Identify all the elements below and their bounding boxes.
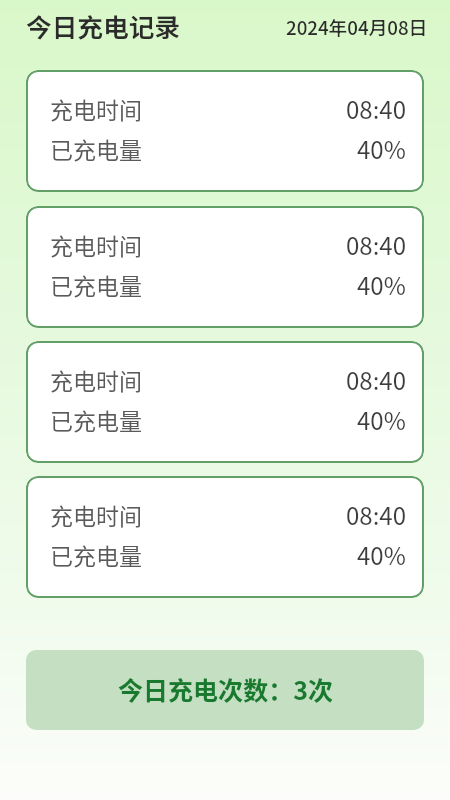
staticText: 2024年04月08日 [286, 13, 428, 40]
staticText: 充电时间 [50, 92, 142, 125]
staticText: 充电时间 [50, 498, 142, 531]
staticText: 08:40 [346, 91, 406, 126]
button[interactable]: 充电时间 [26, 476, 424, 598]
staticText: 08:40 [346, 497, 406, 532]
staticText: 已充电量 [50, 268, 142, 301]
staticText: 充电时间 [50, 228, 142, 261]
staticText: 40% [357, 267, 406, 302]
staticText: 充电时间 [50, 363, 142, 396]
staticText: 已充电量 [50, 403, 142, 436]
button[interactable]: 充电时间 [26, 206, 424, 328]
staticText: 今日充电次数：3次 [118, 671, 333, 707]
staticText: 40% [357, 402, 406, 437]
staticText: 已充电量 [50, 538, 142, 571]
button[interactable]: 充电时间 [26, 341, 424, 463]
button[interactable]: 充电时间 [26, 70, 424, 192]
button[interactable]: 今日充电次数：3次 [26, 650, 424, 730]
staticText: 今日充电记录 [26, 7, 181, 44]
staticText: 08:40 [346, 362, 406, 397]
staticText: 已充电量 [50, 132, 142, 165]
staticText: 08:40 [346, 227, 406, 262]
staticText: 40% [357, 131, 406, 166]
staticText: 40% [357, 537, 406, 572]
